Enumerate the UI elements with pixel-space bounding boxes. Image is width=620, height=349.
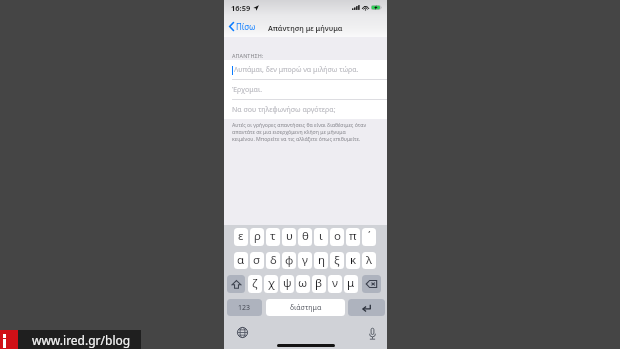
button[interactable]: ζ (248, 275, 262, 293)
button[interactable]: ΄ (362, 228, 376, 246)
staticText: 16:59 (231, 3, 251, 13)
button[interactable]: Shift (227, 275, 245, 293)
button[interactable]: ν (328, 275, 342, 293)
staticText: α (237, 252, 245, 268)
staticText: η (318, 252, 325, 268)
button[interactable]: ι (314, 228, 328, 246)
button[interactable]: φ (282, 252, 296, 269)
button[interactable]: Λυπάμαι, δεν μπορώ να μιλήσω τώρα. (224, 60, 387, 79)
staticText: Απάντηση με μήνυμα (268, 23, 343, 33)
button[interactable]: θ (298, 228, 312, 246)
button[interactable]: Change keyboard (237, 327, 248, 338)
staticText: ε (238, 228, 244, 244)
staticText: υ (286, 228, 293, 244)
button[interactable]: Έρχομαι. (224, 80, 387, 99)
staticText: φ (285, 252, 294, 268)
staticText: www.ired.gr/blog (32, 332, 131, 348)
button[interactable]: λ (362, 252, 376, 269)
staticText: ΑΠΑΝΤΗΣΗ: (232, 52, 264, 59)
staticText: ω (298, 275, 308, 291)
button[interactable]: ψ (280, 275, 294, 293)
staticText: θ (302, 228, 309, 244)
button[interactable]: Return (348, 299, 385, 316)
staticText: ψ (283, 275, 292, 291)
button[interactable]: 123 (227, 299, 262, 316)
staticText: 123 (238, 303, 251, 313)
staticText: π (349, 228, 357, 244)
staticText: ι (319, 228, 323, 244)
staticText: ο (334, 228, 341, 244)
button[interactable]: γ (298, 252, 312, 269)
button[interactable]: υ (282, 228, 296, 246)
staticText: Πίσω (236, 21, 256, 32)
staticText: Να σου τηλεφωνήσω αργότερα; (232, 105, 336, 115)
staticText: γ (302, 252, 308, 268)
staticText: μ (347, 275, 355, 291)
button[interactable]: σ (250, 252, 264, 269)
button[interactable]: Να σου τηλεφωνήσω αργότερα; (224, 100, 387, 119)
button[interactable]: η (314, 252, 328, 269)
button[interactable]: κ (346, 252, 360, 269)
button[interactable]: ο (330, 228, 344, 246)
button[interactable]: Backspace (362, 275, 381, 293)
button[interactable]: ξ (330, 252, 344, 269)
button[interactable]: μ (344, 275, 358, 293)
staticText: τ (270, 228, 276, 244)
staticText: ζ (252, 275, 258, 291)
button[interactable]: Πίσω (226, 20, 259, 33)
button[interactable]: ε (234, 228, 248, 246)
staticText: ΄ (368, 228, 371, 244)
staticText: δ (270, 252, 277, 268)
button[interactable]: διάστημα (266, 299, 345, 316)
staticText: ξ (334, 252, 340, 268)
button[interactable]: π (346, 228, 360, 246)
staticText: Λυπάμαι, δεν μπορώ να μιλήσω τώρα. (234, 65, 359, 75)
button[interactable]: χ (264, 275, 278, 293)
staticText: ρ (254, 228, 261, 244)
staticText: ν (332, 275, 338, 291)
button[interactable]: τ (266, 228, 280, 246)
staticText: χ (268, 275, 275, 291)
staticText: διάστημα (290, 303, 322, 313)
button[interactable]: α (234, 252, 248, 269)
staticText: Αυτές οι γρήγορες απαντήσεις θα είναι δι… (232, 121, 367, 128)
staticText: απαντάτε σε μια εισερχόμενη κλήση με μήν… (232, 128, 346, 135)
staticText: κειμένου. Μπορείτε να τις αλλάξετε όπως … (232, 135, 361, 142)
button[interactable]: β (312, 275, 326, 293)
button[interactable]: ω (296, 275, 310, 293)
button[interactable]: ρ (250, 228, 264, 246)
button[interactable]: δ (266, 252, 280, 269)
staticText: κ (350, 252, 357, 268)
button[interactable]: Dictation (369, 328, 376, 340)
staticText: σ (253, 252, 261, 268)
staticText: λ (366, 252, 372, 268)
staticText: β (315, 275, 323, 291)
staticText: Έρχομαι. (232, 85, 263, 95)
